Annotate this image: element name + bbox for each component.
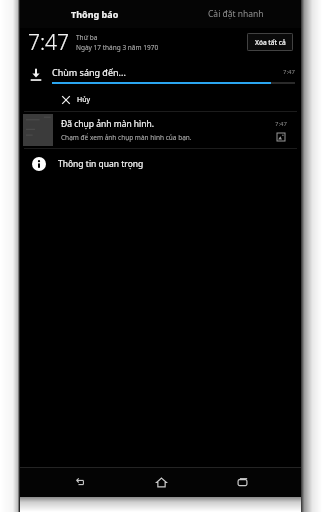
staticText: Cài đặt nhanh: [208, 8, 264, 20]
other: Thông tin: [32, 157, 46, 171]
button[interactable]: Tải xuống: [20, 58, 301, 111]
staticText: Xóa tất cả: [255, 38, 286, 47]
other: Tải xuống: [29, 68, 43, 82]
staticText: Hủy: [77, 95, 91, 105]
other: Hủy: [61, 95, 71, 105]
staticText: 7:47: [28, 28, 70, 56]
button[interactable]: Xóa tất cả: [247, 33, 293, 51]
staticText: Thông báo: [71, 8, 119, 20]
staticText: Chùm sáng đến...: [52, 66, 283, 78]
button[interactable]: Cài đặt nhanh: [170, 0, 301, 28]
staticText: 7:47: [283, 68, 295, 76]
staticText: Thông tin quan trọng: [58, 158, 144, 170]
button[interactable]: Thông báo: [20, 0, 170, 28]
button[interactable]: Ứng dụng gần đây: [220, 467, 264, 497]
staticText: Thứ ba: [76, 33, 98, 42]
button[interactable]: Hủy: [20, 91, 301, 108]
staticText: Chạm để xem ảnh chụp màn hình của bạn.: [61, 133, 192, 142]
staticText: Đã chụp ảnh màn hình.: [61, 118, 155, 130]
button[interactable]: Quay lại: [57, 467, 101, 497]
button[interactable]: Đã chụp ảnh màn hình.: [20, 112, 301, 148]
button[interactable]: Thông tin: [20, 149, 301, 179]
staticText: 7:47: [275, 120, 287, 128]
button[interactable]: Màn hình chính: [139, 467, 183, 497]
staticText: Ngày 17 tháng 3 năm 1970: [76, 43, 159, 52]
